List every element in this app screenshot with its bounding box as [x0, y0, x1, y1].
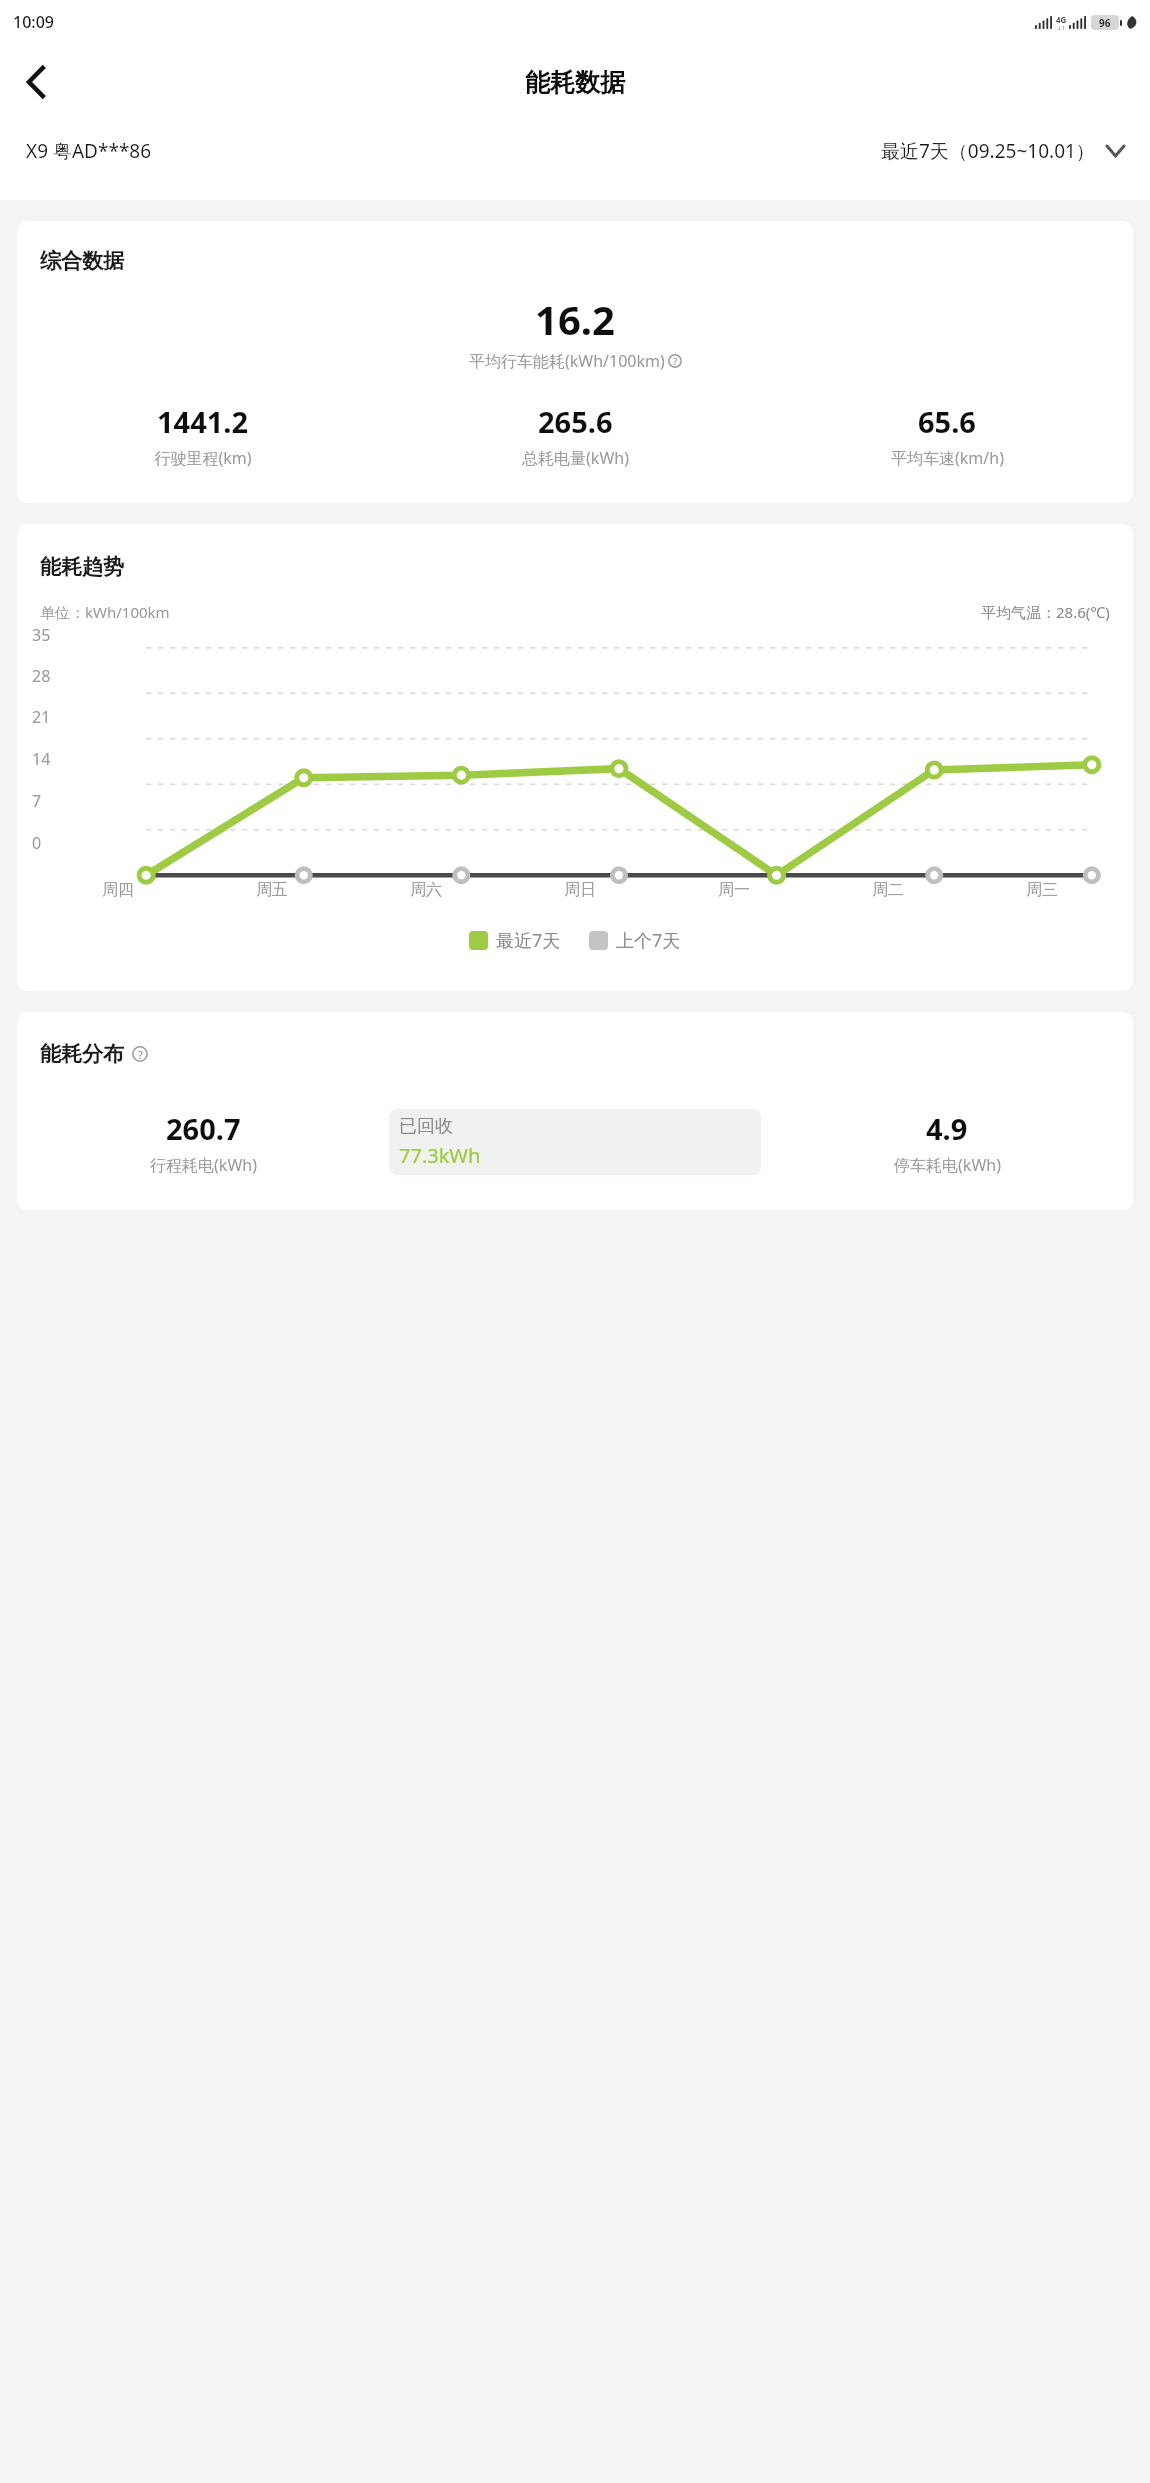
staticText: 96 — [1099, 16, 1111, 30]
staticText: 7 — [32, 790, 42, 812]
button[interactable]: 已回收 — [389, 1109, 761, 1175]
button[interactable]: 4.9 — [761, 1109, 1133, 1176]
staticText: 总耗电量(kWh) — [522, 447, 629, 469]
staticText: 1441.2 — [157, 402, 249, 441]
staticText: 4.9 — [926, 1109, 968, 1148]
staticText: 周六 — [410, 880, 442, 900]
staticText: X9 粤AD***86 — [26, 138, 152, 164]
staticText: 平均气温：28.6(℃) — [981, 602, 1110, 622]
button[interactable]: Back — [8, 54, 64, 110]
staticText: 最近7天 — [496, 928, 561, 953]
staticText: 能耗趋势 — [40, 554, 124, 580]
button[interactable]: 能耗分布 — [17, 1012, 1133, 1210]
staticText: 行程耗电(kWh) — [150, 1154, 257, 1176]
staticText: 综合数据 — [40, 248, 124, 274]
staticText: 260.7 — [166, 1109, 241, 1148]
button[interactable]: 上个7天 — [589, 928, 681, 953]
staticText: 16.2 — [535, 292, 615, 346]
button[interactable]: X9 粤AD***86 — [26, 138, 152, 164]
staticText: 10:09 — [13, 11, 54, 33]
staticText: ? — [673, 355, 678, 368]
staticText: 周三 — [1026, 880, 1058, 900]
staticText: 已回收 — [399, 1115, 453, 1138]
button[interactable]: 最近7天（09.25~10.01） — [881, 138, 1124, 164]
staticText: 21 — [32, 706, 51, 728]
button[interactable]: 260.7 — [17, 1109, 389, 1176]
staticText: 平均车速(km/h) — [891, 447, 1004, 469]
staticText: 平均行车能耗(kWh/100km) — [469, 350, 665, 372]
staticText: 35 — [32, 624, 51, 646]
button[interactable]: 最近7天 — [469, 928, 561, 953]
staticText: ? — [138, 1047, 143, 1062]
staticText: 28 — [32, 665, 51, 687]
button[interactable]: 综合数据 — [17, 221, 1133, 503]
staticText: 单位：kWh/100km — [40, 602, 170, 622]
staticText: 周五 — [256, 880, 288, 900]
staticText: 周一 — [718, 880, 750, 900]
button[interactable]: 能耗趋势 — [17, 524, 1133, 991]
staticText: 行驶里程(km) — [154, 447, 252, 469]
button[interactable]: 65.6 — [761, 402, 1133, 469]
staticText: 能耗数据 — [525, 67, 625, 98]
staticText: 能耗分布 — [40, 1041, 124, 1067]
staticText: 上个7天 — [616, 928, 681, 953]
staticText: 4G — [1056, 14, 1067, 25]
button[interactable]: 1441.2 — [17, 402, 389, 469]
staticText: 265.6 — [538, 402, 613, 441]
staticText: 0 — [32, 832, 42, 854]
button[interactable]: 265.6 — [389, 402, 761, 469]
staticText: 14 — [32, 748, 51, 770]
staticText: 周日 — [564, 880, 596, 900]
staticText: 周二 — [872, 880, 904, 900]
staticText: 65.6 — [918, 402, 976, 441]
staticText: 周四 — [102, 880, 134, 900]
staticText: ↓↑ — [1057, 25, 1066, 31]
staticText: 最近7天（09.25~10.01） — [881, 138, 1095, 164]
staticText: 77.3kWh — [399, 1142, 481, 1169]
staticText: 停车耗电(kWh) — [894, 1154, 1001, 1176]
